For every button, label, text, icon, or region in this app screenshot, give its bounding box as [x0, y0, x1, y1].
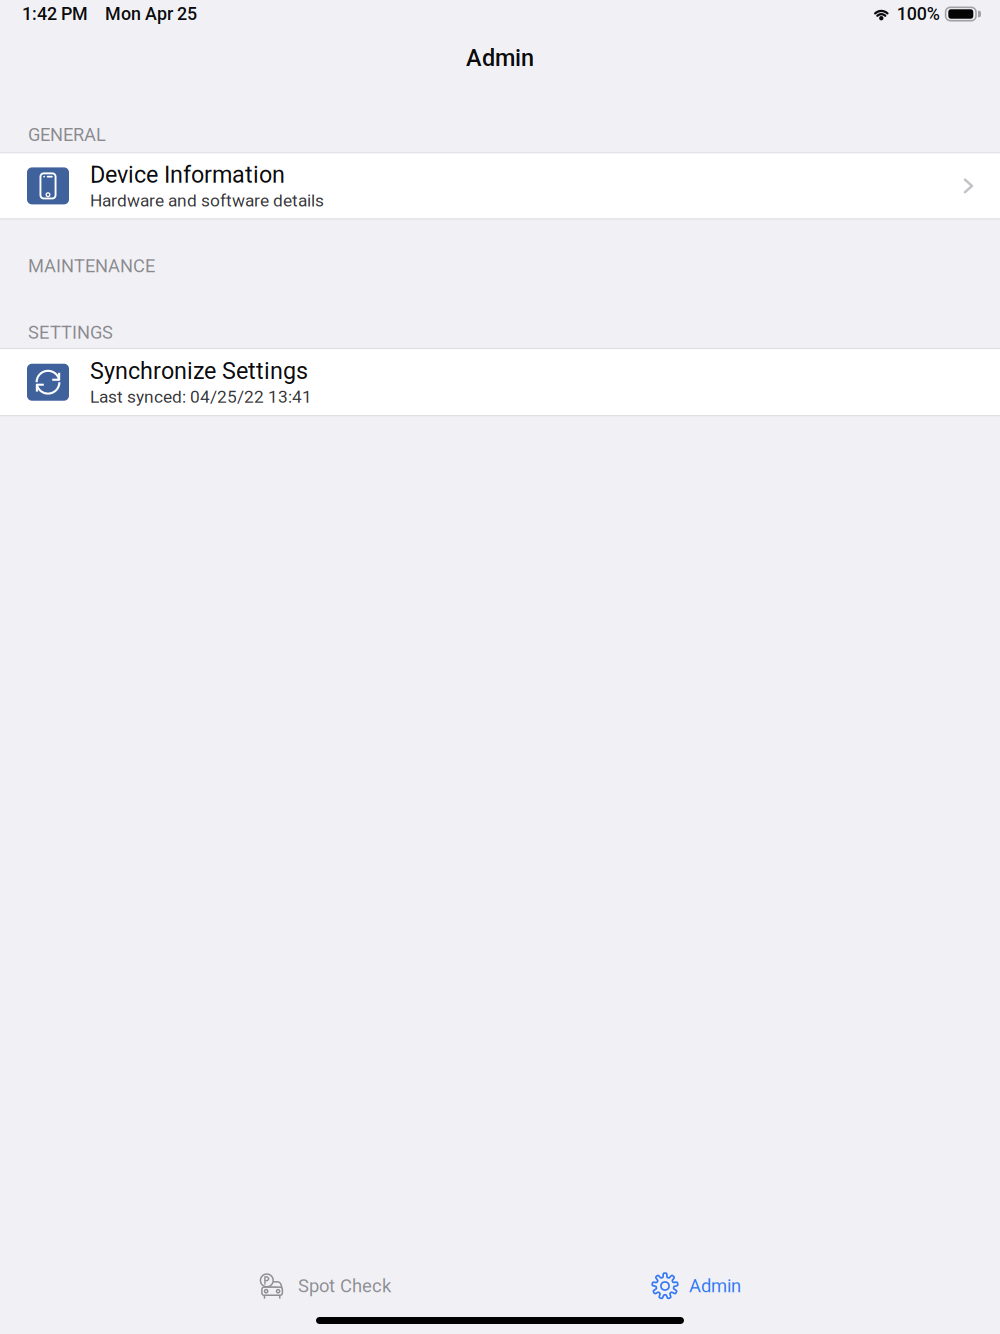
staticText: 100% [897, 3, 940, 24]
staticText: 1:42 PM [22, 3, 88, 24]
staticText: Last synced: 04/25/22 13:41 [90, 387, 312, 407]
button[interactable]: Synchronize Settings [0, 349, 1000, 415]
staticText: Synchronize Settings [90, 357, 308, 385]
button[interactable]: Spot Check [249, 1264, 401, 1308]
staticText: Admin [689, 1275, 741, 1297]
staticText: Hardware and software details [90, 190, 324, 211]
staticText: Device Information [90, 161, 285, 188]
button[interactable]: Admin [641, 1263, 751, 1309]
staticText: GENERAL [28, 124, 106, 145]
staticText: Mon Apr 25 [105, 3, 197, 24]
staticText: MAINTENANCE [28, 255, 155, 277]
button[interactable]: Device Information [0, 153, 1000, 218]
staticText: Spot Check [298, 1275, 391, 1297]
staticText: Admin [466, 44, 534, 72]
staticText: SETTINGS [28, 322, 113, 343]
